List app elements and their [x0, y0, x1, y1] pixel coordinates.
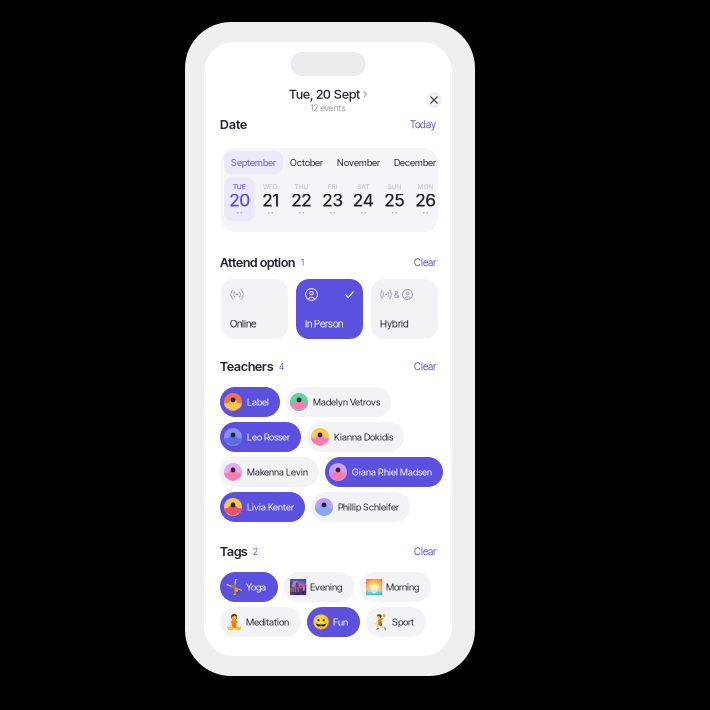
button[interactable]: December [387, 151, 443, 174]
staticText: December [394, 157, 436, 168]
button[interactable]: FRI [317, 177, 348, 221]
button[interactable]: Clear [414, 545, 436, 558]
staticText: & [394, 289, 400, 300]
button[interactable]: Label [220, 387, 280, 417]
staticText: Giana Rhiel Madsen [352, 466, 432, 478]
staticText: Label [247, 396, 269, 408]
staticText: 4 [279, 361, 284, 372]
staticText: Attend option [220, 255, 295, 270]
button[interactable]: & [371, 279, 438, 339]
button[interactable]: Madelyn Vetrovs [286, 387, 391, 417]
button[interactable]: Clear [414, 360, 436, 373]
staticText: Meditation [246, 616, 289, 628]
staticText: Makenna Levin [247, 466, 308, 478]
staticText: 😀 [312, 614, 330, 630]
button[interactable]: SAT [348, 177, 379, 221]
staticText: Morning [386, 581, 419, 593]
staticText: Yoga [246, 581, 266, 593]
button[interactable]: Leo Rosser [220, 422, 301, 452]
staticText: Evening [310, 581, 342, 593]
button[interactable]: Clear [414, 256, 436, 269]
button[interactable]: 😀 [307, 607, 360, 637]
staticText: FRI [327, 183, 337, 191]
button[interactable]: Livia Kenter [220, 492, 305, 522]
staticText: Teachers [220, 359, 273, 374]
staticText: TUE [233, 183, 246, 191]
staticText: 24 [353, 190, 374, 211]
staticText: 12 events [310, 103, 345, 113]
button[interactable]: October [283, 151, 330, 174]
staticText: 23 [322, 190, 342, 211]
staticText: 🌅 [365, 579, 383, 595]
staticText: Online [230, 318, 256, 330]
button[interactable]: Kianna Dokidis [307, 422, 404, 452]
staticText: Tags [220, 544, 247, 559]
staticText: 🧘 [225, 614, 243, 630]
staticText: November [337, 157, 380, 168]
staticText: Hybrid [380, 318, 409, 330]
staticText: MON [417, 183, 433, 191]
button[interactable]: WED [255, 177, 286, 221]
button[interactable]: September [224, 151, 283, 174]
staticText: Kianna Dokidis [334, 431, 393, 443]
staticText: In Person [305, 318, 343, 330]
staticText: THU [294, 183, 308, 191]
button[interactable]: Online [221, 279, 288, 339]
staticText: Livia Kenter [247, 501, 294, 513]
button[interactable]: Giana Rhiel Madsen [325, 457, 443, 487]
button[interactable]: November [330, 151, 387, 174]
staticText: Phillip Schleifer [338, 501, 399, 513]
staticText: 20 [229, 190, 249, 211]
staticText: Today [410, 118, 436, 131]
staticText: 21 [262, 190, 278, 211]
staticText: Fun [333, 616, 348, 628]
staticText: September [231, 157, 276, 168]
staticText: 2 [253, 546, 258, 557]
staticText: 25 [384, 190, 404, 211]
staticText: 🤾 [371, 614, 389, 630]
staticText: 22 [291, 190, 311, 211]
button[interactable]: 🌅 [360, 572, 431, 602]
button[interactable]: 🧘 [220, 607, 301, 637]
staticText: Clear [414, 360, 436, 373]
staticText: October [290, 157, 323, 168]
staticText: WED [263, 183, 278, 191]
button[interactable]: Phillip Schleifer [311, 492, 410, 522]
staticText: SUN [387, 183, 401, 191]
button[interactable]: Close [426, 92, 442, 108]
staticText: 1 [301, 257, 304, 268]
staticText: Date [220, 117, 247, 132]
staticText: Clear [414, 545, 436, 558]
button[interactable]: 🤸 [220, 572, 278, 602]
button[interactable]: TUE [224, 177, 255, 221]
button[interactable]: SUN [379, 177, 410, 221]
button[interactable]: Makenna Levin [220, 457, 319, 487]
staticText: SAT [357, 183, 369, 191]
button[interactable]: 🤾 [366, 607, 426, 637]
button[interactable]: THU [286, 177, 317, 221]
staticText: Leo Rosser [247, 431, 290, 443]
button[interactable]: In Person [296, 279, 363, 339]
staticText: Sport [392, 616, 414, 628]
staticText: Clear [414, 256, 436, 269]
staticText: 🤸 [225, 579, 243, 595]
button[interactable]: MON [410, 177, 441, 221]
staticText: Tue, 20 Sept [289, 87, 360, 102]
button[interactable]: 🌆 [284, 572, 354, 602]
button[interactable]: Today [410, 118, 436, 131]
staticText: Madelyn Vetrovs [313, 396, 380, 408]
staticText: 26 [415, 190, 435, 211]
staticText: 🌆 [289, 579, 307, 595]
